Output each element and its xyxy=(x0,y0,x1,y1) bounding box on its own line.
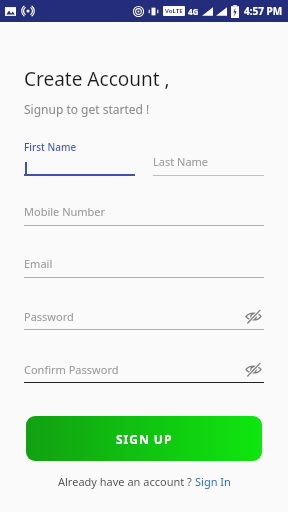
button[interactable]: Sign In xyxy=(195,474,231,489)
staticText: Already have an account ? xyxy=(58,474,195,489)
staticText: Email xyxy=(24,256,53,271)
staticText: Sign In xyxy=(195,474,231,489)
staticText: First Name xyxy=(24,140,77,154)
staticText: SIGN UP xyxy=(116,431,173,447)
staticText: Signup to get started ! xyxy=(24,101,150,117)
button[interactable]: Toggle confirm password visibility xyxy=(242,358,264,380)
staticText: VoLTE xyxy=(165,7,183,15)
staticText: Create Account , xyxy=(24,66,170,92)
button[interactable]: SIGN UP xyxy=(26,416,262,461)
staticText: Confirm Password xyxy=(24,362,242,377)
button[interactable]: Toggle password visibility xyxy=(242,305,264,327)
button[interactable]: First Name xyxy=(24,140,135,176)
button[interactable]: Confirm Password xyxy=(24,358,264,383)
button[interactable]: Email xyxy=(24,256,264,278)
button[interactable]: Password xyxy=(24,305,264,330)
staticText: Last Name xyxy=(153,154,209,169)
button[interactable]: Mobile Number xyxy=(24,204,264,226)
staticText: Mobile Number xyxy=(24,204,106,219)
staticText: 4G xyxy=(188,6,199,17)
button[interactable]: Last Name xyxy=(153,154,264,176)
staticText: 4:57 PM xyxy=(244,4,283,18)
staticText: Password xyxy=(24,309,242,324)
